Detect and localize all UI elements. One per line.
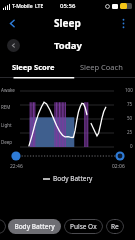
staticText: 0 <box>130 143 133 149</box>
button[interactable]: Pulse Ox <box>64 219 103 234</box>
staticText: 100 <box>125 87 133 93</box>
button[interactable] <box>0 219 6 234</box>
button[interactable]: Re <box>106 219 124 234</box>
button[interactable]: Back <box>2 13 22 33</box>
button[interactable]: Sleep Coach <box>67 57 135 77</box>
staticText: Sleep Coach <box>80 62 123 72</box>
staticText: LTE <box>35 3 44 10</box>
staticText: 50 <box>127 115 133 121</box>
staticText: Sleep <box>54 16 81 30</box>
staticText: 75 <box>127 101 133 107</box>
staticText: REM <box>1 104 11 110</box>
staticText: T-Mobile <box>12 3 33 10</box>
staticText: 05:56 <box>60 2 76 10</box>
staticText: 22:46 <box>10 163 23 170</box>
staticText: Deep <box>1 139 13 145</box>
staticText: Awake <box>1 87 15 93</box>
staticText: Body Battery <box>14 222 55 231</box>
staticText: 02:06 <box>112 163 125 170</box>
staticText: Pulse Ox <box>70 222 97 231</box>
staticText: Body Battery <box>53 174 93 183</box>
button[interactable]: Body Battery <box>8 219 61 234</box>
staticText: 25 <box>127 129 133 135</box>
staticText: Today <box>54 39 82 52</box>
button[interactable]: More options <box>113 13 133 33</box>
staticText: Sleep Score <box>12 62 55 72</box>
button[interactable]: Sleep Score <box>0 57 67 77</box>
staticText: Re <box>111 222 119 231</box>
staticText: Light <box>1 122 12 128</box>
button[interactable]: Previous day <box>7 39 20 52</box>
